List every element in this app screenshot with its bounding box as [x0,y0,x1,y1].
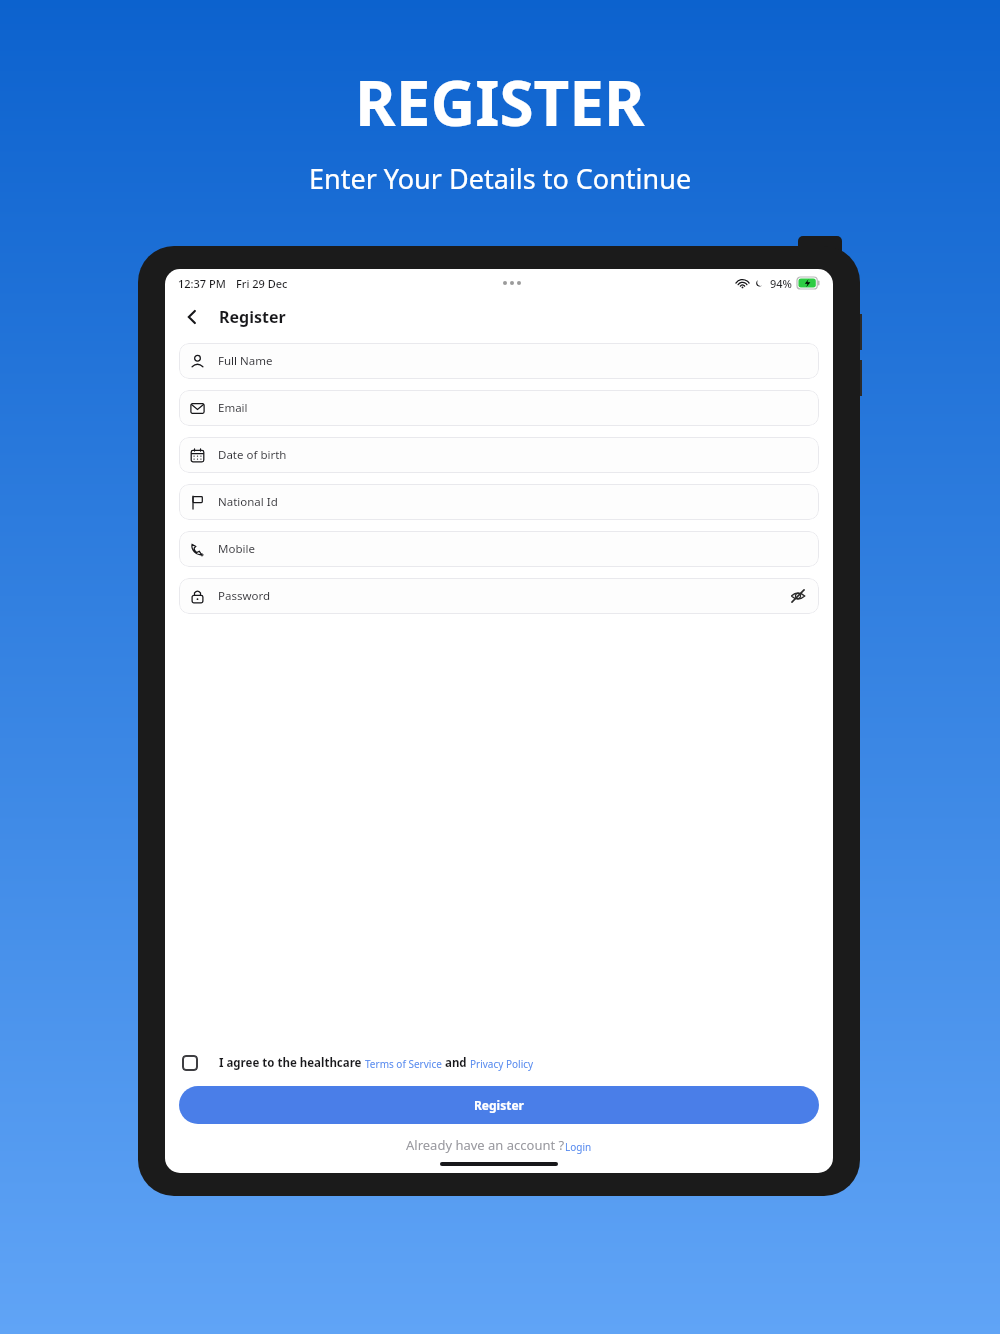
button[interactable]: Register [179,1086,819,1124]
button[interactable]: National Id [179,484,819,520]
staticText: Enter Your Details to Continue [309,160,692,197]
staticText: 94% [770,276,792,291]
button[interactable]: Login [565,1140,592,1154]
staticText: Register [219,306,286,328]
staticText: Privacy Policy [470,1057,534,1071]
staticText: Terms of Service [365,1057,442,1071]
button[interactable]: Show password [788,586,808,606]
button[interactable]: I agree to the healthcare [179,1052,819,1074]
staticText: Already have an account ? [406,1136,565,1154]
staticText: Password [218,588,271,604]
button[interactable]: Email [179,390,819,426]
button[interactable]: Full Name [179,343,819,379]
staticText: REGISTER [355,60,645,144]
staticText: Email [218,400,248,416]
staticText: Register [474,1097,524,1113]
staticText: and [442,1055,470,1071]
staticText: Full Name [218,353,273,369]
staticText: Date of birth [218,447,287,463]
button[interactable]: Back [177,302,207,332]
button[interactable]: Mobile [179,531,819,567]
button[interactable]: Password [179,578,819,614]
staticText: I agree to the healthcare [219,1055,365,1071]
button[interactable]: Date of birth [179,437,819,473]
staticText: 12:37 PM [178,276,226,291]
staticText: National Id [218,494,278,510]
staticText: Mobile [218,541,255,557]
staticText: Fri 29 Dec [236,276,288,291]
